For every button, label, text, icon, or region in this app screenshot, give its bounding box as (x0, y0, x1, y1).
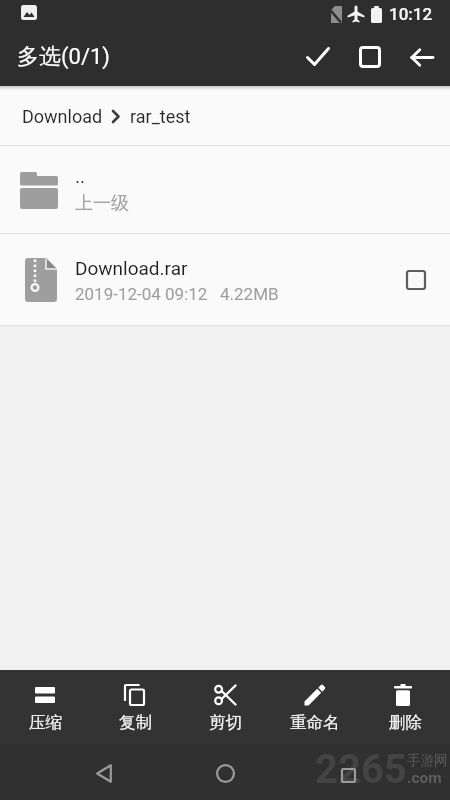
button[interactable]: Download.rar (0, 234, 450, 326)
button[interactable]: 复制 (90, 670, 180, 745)
button[interactable] (354, 41, 386, 73)
button[interactable] (302, 41, 334, 73)
staticText: .. (75, 165, 86, 187)
button[interactable] (406, 41, 438, 73)
staticText: 上一级 (75, 192, 129, 215)
staticText: 手游网 (407, 752, 448, 769)
button[interactable]: 剪切 (180, 670, 270, 745)
staticText: .com (407, 769, 442, 787)
button[interactable]: .. (0, 146, 450, 234)
button[interactable]: Download (22, 106, 103, 127)
staticText: 10:12 (389, 4, 433, 24)
button[interactable] (86, 755, 122, 791)
button[interactable]: rar_test (130, 106, 191, 127)
staticText: 多选(0/1) (17, 43, 110, 71)
button[interactable]: 压缩 (0, 670, 90, 745)
staticText: 剪切 (209, 712, 242, 733)
button[interactable] (207, 755, 243, 791)
staticText: 2265 (315, 746, 407, 793)
staticText: Download.rar (75, 257, 188, 279)
button[interactable]: 删除 (360, 670, 450, 745)
button[interactable] (396, 260, 436, 300)
staticText: 重命名 (290, 712, 340, 733)
button[interactable]: 重命名 (270, 670, 360, 745)
staticText: 压缩 (29, 712, 62, 733)
button[interactable] (330, 757, 366, 793)
staticText: 删除 (389, 712, 422, 733)
staticText: 2019-12-04 09:12 4.22MB (75, 284, 279, 304)
staticText: 复制 (119, 712, 152, 733)
